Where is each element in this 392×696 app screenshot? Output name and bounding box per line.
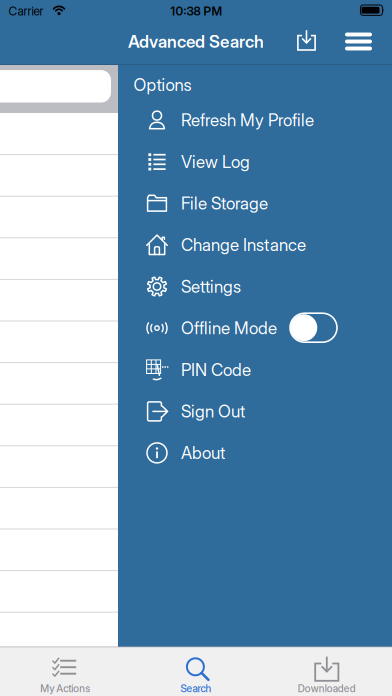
staticText: Refresh My Profile — [181, 110, 314, 130]
button[interactable]: About — [145, 432, 392, 474]
staticText: Change Instance — [181, 235, 306, 255]
staticText: Downloaded — [298, 682, 356, 695]
button[interactable]: Offline Mode — [145, 307, 392, 349]
staticText: PIN Code — [181, 359, 251, 380]
staticText: Settings — [181, 276, 241, 297]
button[interactable]: Sign Out — [145, 390, 392, 432]
staticText: My Actions — [40, 682, 90, 695]
staticText: View Log — [181, 151, 250, 172]
staticText: Carrier — [8, 4, 43, 18]
button[interactable]: Downloaded — [261, 647, 392, 696]
staticText: Options — [133, 74, 191, 95]
button[interactable]: Offline Mode — [290, 313, 337, 342]
button[interactable]: Settings — [145, 266, 392, 307]
staticText: Offline Mode — [181, 318, 277, 338]
button[interactable]: Refresh My Profile — [145, 99, 392, 141]
staticText: 10:38 PM — [170, 4, 222, 18]
button[interactable]: Search — [131, 647, 261, 696]
staticText: Search — [180, 682, 211, 695]
staticText: File Storage — [181, 193, 268, 214]
button[interactable]: PIN Code — [145, 349, 392, 390]
button[interactable]: File Storage — [145, 182, 392, 224]
staticText: Advanced Search — [128, 31, 264, 52]
staticText: About — [181, 443, 225, 463]
button[interactable]: My Actions — [0, 647, 131, 696]
button[interactable]: Change Instance — [145, 224, 392, 266]
button[interactable]: Download — [294, 29, 318, 53]
staticText: Sign Out — [181, 401, 245, 422]
button[interactable]: View Log — [145, 141, 392, 182]
button[interactable]: Menu — [344, 29, 372, 53]
